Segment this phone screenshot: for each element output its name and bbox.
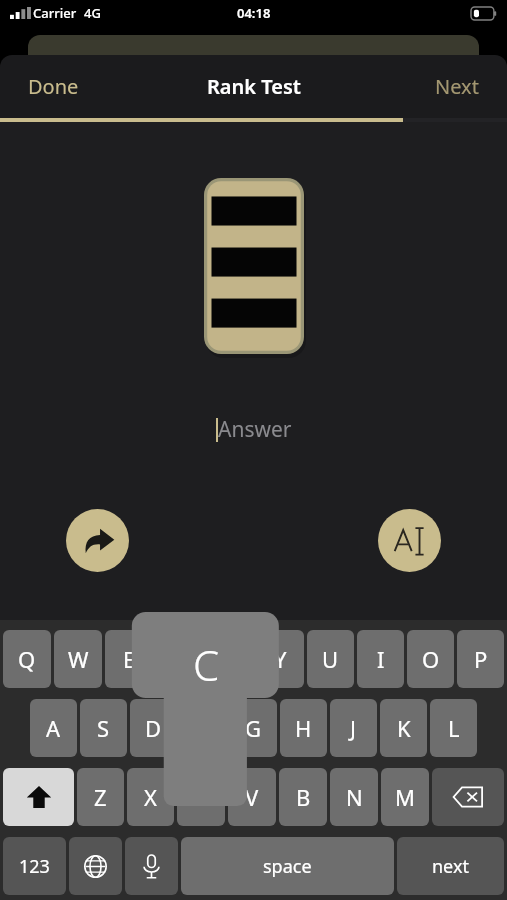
button[interactable]: Y <box>257 630 304 688</box>
button[interactable]: V <box>228 768 276 826</box>
button[interactable]: Answer <box>176 409 332 450</box>
button[interactable]: Dictate <box>125 837 178 895</box>
button[interactable]: X <box>127 768 174 826</box>
button[interactable]: P <box>457 630 504 688</box>
staticText: P <box>474 644 488 674</box>
button[interactable]: 123 <box>3 837 66 895</box>
staticText: L <box>448 713 460 743</box>
staticText: G <box>245 713 262 743</box>
staticText: B <box>296 782 311 812</box>
staticText: Y <box>274 644 287 674</box>
staticText: C <box>186 636 226 693</box>
staticText: Rank Test <box>207 73 301 100</box>
button[interactable]: O <box>407 630 454 688</box>
button[interactable]: Change keyboard <box>69 837 122 895</box>
button[interactable]: Q <box>3 630 51 688</box>
button[interactable]: L <box>430 699 477 757</box>
button[interactable]: G <box>230 699 277 757</box>
staticText: E <box>123 644 136 674</box>
staticText: Carrier <box>33 4 77 22</box>
button[interactable]: space <box>181 837 394 895</box>
button[interactable]: B <box>279 768 327 826</box>
button[interactable]: E <box>105 630 153 688</box>
button[interactable]: Z <box>77 768 124 826</box>
button[interactable]: T <box>207 630 254 688</box>
staticText: N <box>346 782 363 812</box>
button[interactable]: M <box>381 768 429 826</box>
button[interactable]: A <box>30 699 77 757</box>
staticText: H <box>295 713 312 743</box>
staticText: M <box>395 782 415 812</box>
staticText: V <box>245 782 259 812</box>
button[interactable]: Text input <box>378 509 441 572</box>
button[interactable]: I <box>357 630 404 688</box>
staticText: A <box>46 713 61 743</box>
staticText: U <box>322 644 339 674</box>
button[interactable]: Backspace <box>432 768 504 826</box>
button[interactable]: next <box>397 837 504 895</box>
button[interactable]: D <box>130 699 177 757</box>
staticText: Z <box>94 782 107 812</box>
button[interactable]: W <box>54 630 102 688</box>
button[interactable]: S <box>80 699 127 757</box>
button[interactable]: Shift <box>3 768 74 826</box>
staticText: K <box>397 713 411 743</box>
button[interactable]: Done <box>14 65 93 108</box>
button[interactable]: Share <box>66 509 129 572</box>
staticText: Next <box>435 73 479 100</box>
button[interactable]: U <box>307 630 354 688</box>
staticText: next <box>432 854 469 879</box>
staticText: Done <box>28 73 79 100</box>
staticText: C <box>194 782 208 812</box>
button[interactable]: H <box>280 699 327 757</box>
staticText: space <box>263 854 312 879</box>
button[interactable]: N <box>330 768 378 826</box>
staticText: D <box>145 713 162 743</box>
button[interactable]: J <box>330 699 377 757</box>
button[interactable]: R <box>156 630 204 688</box>
staticText: S <box>97 713 110 743</box>
staticText: X <box>144 782 157 812</box>
button[interactable]: C <box>177 768 225 826</box>
staticText: J <box>350 713 357 743</box>
staticText: Q <box>18 644 36 674</box>
button[interactable]: K <box>380 699 427 757</box>
staticText: 123 <box>19 854 50 879</box>
staticText: I <box>377 644 385 674</box>
staticText: O <box>422 644 440 674</box>
staticText: 04:18 <box>237 4 271 22</box>
staticText: W <box>68 644 89 674</box>
button[interactable]: Next <box>421 65 493 108</box>
staticText: 4G <box>84 4 101 22</box>
staticText: Answer <box>218 415 292 444</box>
